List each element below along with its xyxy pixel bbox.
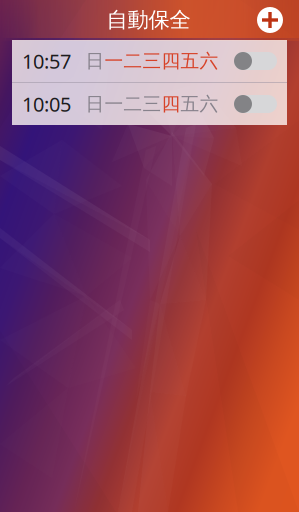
button[interactable]: Enable alarm 10:57	[234, 52, 277, 70]
staticText: 五	[180, 92, 199, 115]
staticText: 二	[123, 92, 142, 115]
staticText: 四	[161, 92, 180, 115]
button[interactable]: Add alarm	[257, 7, 283, 33]
staticText: 自動保全	[106, 7, 190, 33]
staticText: 一	[104, 92, 123, 115]
staticText: 二	[123, 49, 142, 72]
staticText: 日	[85, 92, 104, 115]
staticText: 六	[199, 49, 218, 72]
staticText: 五	[180, 49, 199, 72]
staticText: 10:57	[22, 48, 71, 74]
staticText: 三	[142, 49, 161, 72]
button[interactable]: Enable alarm 10:05	[234, 95, 277, 113]
button[interactable]: 10:57	[12, 40, 287, 82]
staticText: 一	[104, 49, 123, 72]
staticText: 10:05	[22, 91, 71, 117]
button[interactable]: 10:05	[12, 83, 287, 125]
staticText: 三	[142, 92, 161, 115]
staticText: 四	[161, 49, 180, 72]
staticText: 日	[85, 49, 104, 72]
staticText: 六	[199, 92, 218, 115]
